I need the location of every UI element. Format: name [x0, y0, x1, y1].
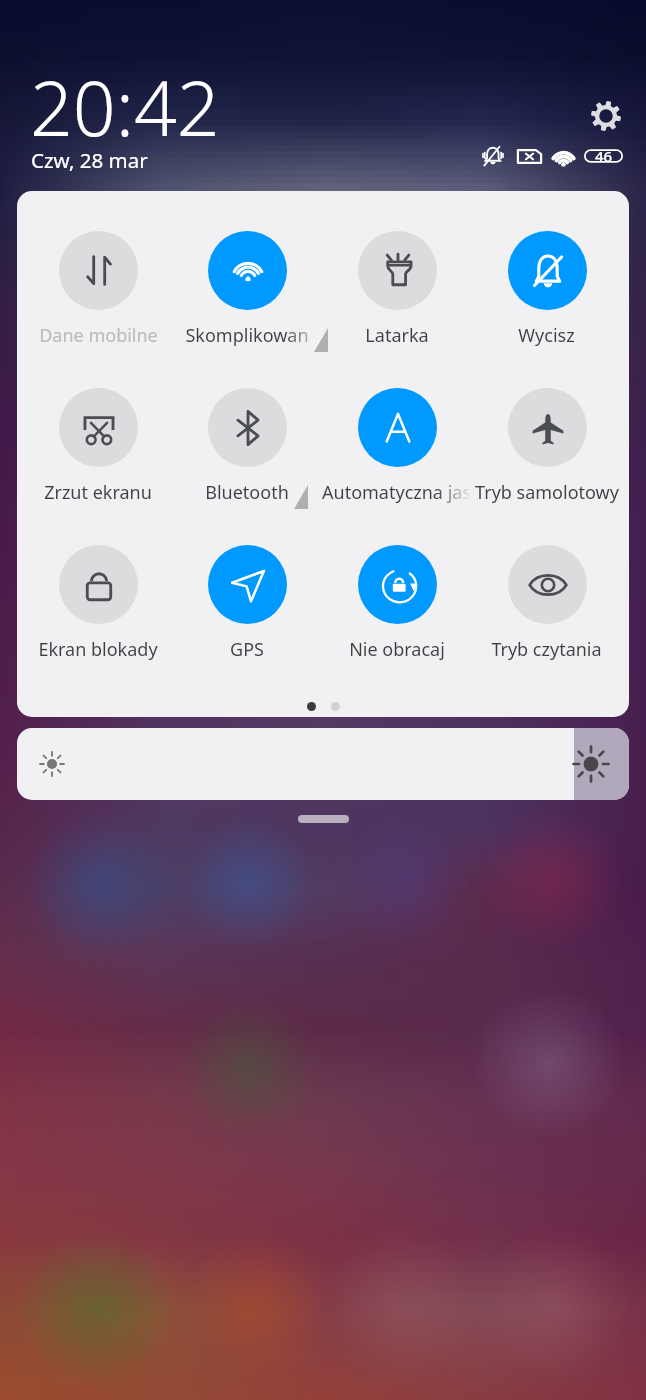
staticText: 46 [595, 146, 613, 166]
button[interactable]: Zrzut ekranu [24, 388, 173, 504]
staticText: Nie obracaj [349, 637, 445, 661]
staticText: Tryb samolotowy [475, 480, 619, 504]
button[interactable]: GPS [173, 545, 322, 661]
button[interactable]: Nie obracaj [322, 545, 472, 661]
button[interactable]: Tryb samolotowy [472, 388, 622, 504]
button[interactable]: Skomplikowan [173, 231, 322, 347]
staticText: Zrzut ekranu [44, 480, 152, 504]
staticText: Latarka [365, 323, 429, 347]
button[interactable]: Settings [586, 96, 626, 136]
button[interactable]: Wycisz [472, 231, 622, 347]
staticText: Bluetooth [205, 480, 289, 504]
staticText: Tryb czytania [491, 637, 602, 661]
button[interactable]: Tryb czytania [472, 545, 622, 661]
staticText: GPS [230, 637, 264, 661]
staticText: Czw, 28 mar [31, 146, 148, 174]
button[interactable]: Automatyczna jas [322, 388, 472, 504]
staticText: Skomplikowan [185, 323, 309, 347]
staticText: Wycisz [518, 323, 575, 347]
staticText: Dane mobilne [39, 323, 158, 347]
staticText: 20:42 [30, 56, 220, 158]
button[interactable]: Dane mobilne [24, 231, 173, 347]
button[interactable]: Brightness [17, 728, 629, 800]
button[interactable]: Bluetooth [173, 388, 322, 504]
staticText: Automatyczna jas [322, 480, 471, 504]
staticText: Ekran blokady [38, 637, 158, 661]
button[interactable]: Latarka [322, 231, 472, 347]
button[interactable]: Ekran blokady [24, 545, 173, 661]
